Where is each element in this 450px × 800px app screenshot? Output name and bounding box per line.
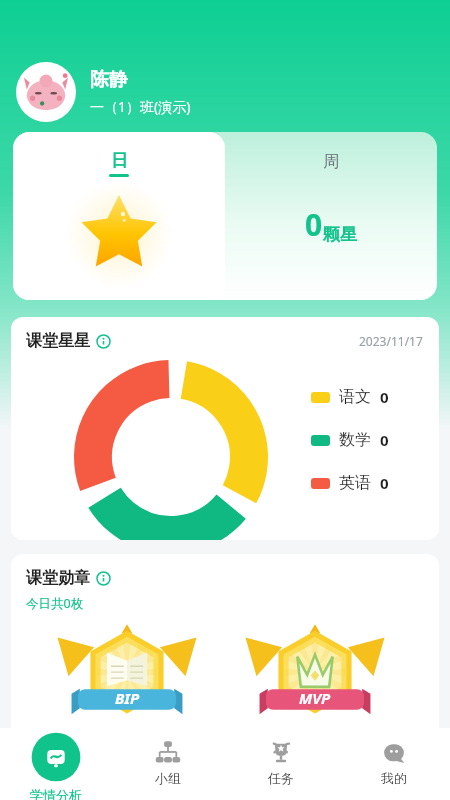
staticText: 0 (380, 430, 389, 450)
button[interactable]: 语文 (311, 387, 389, 407)
staticText: 课堂勋章 (26, 568, 90, 588)
button[interactable]: 任务 (224, 728, 337, 800)
staticText: 0 (380, 387, 389, 407)
other: Info (96, 334, 111, 349)
button[interactable]: 小组 (112, 728, 224, 800)
staticText: 数学 (339, 430, 371, 450)
staticText: 日 (111, 150, 128, 171)
button[interactable]: 学情分析 (0, 728, 112, 800)
other: 我的 (381, 740, 407, 766)
staticText: 一（1）班(演示) (90, 97, 191, 116)
staticText: 陈静 (90, 68, 128, 92)
staticText: 颗星 (323, 224, 357, 245)
staticText: BIP (115, 688, 140, 708)
staticText: 课堂星星 (26, 331, 90, 351)
staticText: 语文 (339, 387, 371, 407)
other: 小组 (155, 740, 181, 766)
staticText: 0 (305, 204, 323, 245)
button[interactable]: MVP (256, 622, 374, 734)
staticText: 周 (323, 152, 339, 172)
staticText: 我的 (381, 770, 407, 786)
button[interactable]: 英语 (311, 473, 389, 493)
other: 任务 (268, 740, 294, 766)
staticText: MVP (299, 688, 331, 708)
button[interactable]: 陈静 (16, 62, 450, 122)
button[interactable]: 日 (13, 132, 225, 300)
staticText: 0 (380, 473, 389, 493)
staticText: 任务 (268, 770, 294, 786)
button[interactable]: 数学 (311, 430, 389, 450)
button[interactable]: 我的 (337, 728, 450, 800)
other: 学情分析 (27, 728, 85, 786)
other: Info (96, 571, 111, 586)
button[interactable]: BIP (68, 622, 186, 734)
staticText: 今日共0枚 (26, 595, 84, 612)
button[interactable]: 周 (225, 132, 437, 300)
staticText: 2023/11/17 (359, 333, 423, 349)
staticText: 小组 (155, 770, 181, 786)
staticText: 英语 (339, 473, 371, 493)
staticText: 学情分析 (30, 787, 82, 800)
